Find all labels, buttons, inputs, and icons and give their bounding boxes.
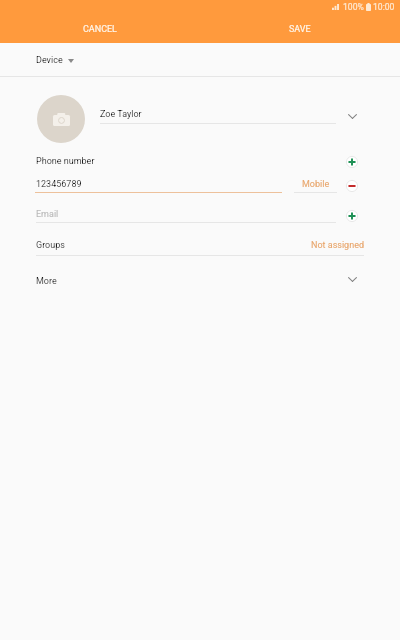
button[interactable]: Expand name fields [338,102,366,130]
button[interactable]: CANCEL [0,15,200,44]
button[interactable]: Show more fields [338,265,366,293]
button[interactable]: Device [0,44,400,76]
staticText: Groups [36,240,65,251]
staticText: Not assigned [311,240,364,251]
button[interactable] [0,234,400,256]
button[interactable]: Change contact photo [37,95,85,143]
staticText: Device [36,55,63,66]
staticText: Phone number [36,156,95,167]
button[interactable]: SAVE [200,15,400,44]
staticText: Email [36,209,59,220]
button[interactable]: Remove phone number [338,172,366,200]
button[interactable]: Add email [338,202,366,230]
staticText: Mobile [302,179,330,190]
staticText: SAVE [289,24,311,35]
staticText: More [36,276,57,287]
button[interactable] [0,268,400,292]
staticText: 100% [343,2,364,12]
button[interactable]: Add phone number [338,148,366,176]
staticText: Zoe Taylor [100,109,142,120]
staticText: 10:00 [373,2,395,12]
staticText: CANCEL [83,24,117,35]
staticText: 123456789 [36,179,82,190]
